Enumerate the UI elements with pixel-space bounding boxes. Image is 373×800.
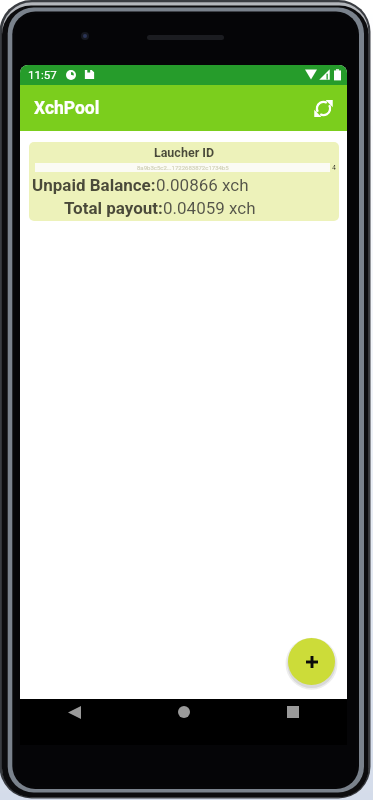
staticText: Total payout: <box>64 198 163 218</box>
staticText: 0.00866 xch <box>156 175 249 195</box>
staticText: 0.04059 xch <box>163 198 256 218</box>
staticText: XchPool <box>34 98 100 119</box>
button[interactable]: Refresh <box>304 89 342 127</box>
button[interactable]: Recents <box>238 699 347 725</box>
staticText: 4 <box>332 164 336 172</box>
staticText: Laucher ID <box>29 145 339 160</box>
button[interactable]: Laucher ID <box>29 142 339 221</box>
button[interactable]: Home <box>129 699 238 725</box>
staticText: 11:57 <box>28 68 57 81</box>
staticText: 8a9b3c5c2...1722683872c1734b5 <box>137 164 229 171</box>
button[interactable]: Add <box>288 638 335 685</box>
staticText: Unpaid Balance: <box>32 175 156 195</box>
button[interactable]: Back <box>20 699 129 725</box>
